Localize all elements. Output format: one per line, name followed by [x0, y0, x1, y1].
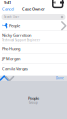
- staticText: Camila Vargas: [2, 66, 28, 71]
- button[interactable]: Clear search: [60, 15, 64, 19]
- button[interactable]: Camila Vargas: [0, 64, 67, 74]
- staticText: Nicky Garretson: [2, 33, 31, 38]
- staticText: Done: [56, 76, 64, 80]
- button[interactable]: JP Morgan: [0, 54, 67, 64]
- button[interactable]: Previous field: [1, 76, 7, 81]
- button[interactable]: Nicky Garretson: [0, 31, 67, 44]
- staticText: Group: [29, 101, 38, 104]
- staticText: Search User: [4, 15, 19, 19]
- staticText: JP Morgan: [2, 56, 20, 61]
- button[interactable]: Pho Huong: [0, 44, 67, 54]
- button[interactable]: People: [0, 21, 67, 31]
- button[interactable]: Done: [54, 75, 65, 81]
- staticText: Case Owner: [22, 6, 45, 12]
- staticText: People: [9, 23, 20, 28]
- staticText: Pho Huong: [2, 46, 20, 51]
- staticText: Technical Support Engineer: [2, 38, 40, 42]
- staticText: People: [28, 96, 39, 101]
- staticText: 9:41: [4, 0, 11, 5]
- staticText: Cancel: [2, 6, 14, 12]
- button[interactable]: Next field: [7, 76, 12, 81]
- button[interactable]: Cancel: [0, 5, 16, 13]
